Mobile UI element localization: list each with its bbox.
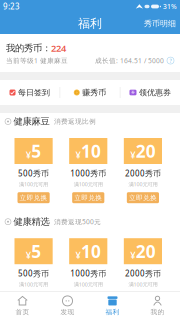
staticText: ¥ xyxy=(130,149,135,161)
staticText: 首页 xyxy=(15,308,29,316)
staticText: 9:23 xyxy=(3,1,20,12)
staticText: 当前等级1 健康麻豆 xyxy=(6,56,68,65)
staticText: 福利 xyxy=(78,16,102,31)
staticText: 满100元可用 xyxy=(128,281,157,288)
staticText: 20 xyxy=(136,139,156,162)
button[interactable]: 券 xyxy=(120,80,180,105)
button[interactable]: 每日签到 xyxy=(0,80,59,105)
staticText: 满100元可用 xyxy=(19,281,48,288)
staticText: 赚秀币 xyxy=(82,88,106,97)
staticText: 健康精选 xyxy=(13,216,49,227)
staticText: 我的 xyxy=(150,308,164,316)
staticText: 我的秀币： xyxy=(6,42,51,54)
button[interactable]: 首页 xyxy=(0,291,45,320)
staticText: 20 xyxy=(136,240,156,263)
staticText: ¥ xyxy=(75,149,80,161)
staticText: 成长值: 164.51 / 5000 xyxy=(95,56,164,65)
staticText: 健康麻豆 xyxy=(13,116,49,127)
staticText: 券 xyxy=(131,90,135,95)
staticText: 领优惠券 xyxy=(139,88,171,97)
staticText: 10 xyxy=(81,139,101,162)
staticText: 福利 xyxy=(105,308,119,316)
staticText: 1000秀币 xyxy=(70,168,106,179)
staticText: 每日签到 xyxy=(18,88,50,97)
button[interactable]: 发现 xyxy=(45,291,90,320)
staticText: 立即兑换 xyxy=(129,194,157,202)
staticText: 10 xyxy=(81,240,101,263)
staticText: 满100元可用 xyxy=(74,281,103,288)
button[interactable]: 立即兑换 xyxy=(127,192,159,203)
button[interactable]: 赚秀币 xyxy=(60,80,120,105)
staticText: 满100元可用 xyxy=(74,181,103,188)
button[interactable]: 成长值说明 xyxy=(164,57,174,64)
staticText: 立即兑换 xyxy=(20,294,48,302)
staticText: 立即兑换 xyxy=(129,294,157,302)
button[interactable]: 福利 xyxy=(90,291,135,320)
staticText: 5 xyxy=(31,139,41,162)
button[interactable]: 我的 xyxy=(135,291,180,320)
staticText: 2000秀币 xyxy=(125,268,161,279)
staticText: 发现 xyxy=(60,308,74,316)
staticText: ¥ xyxy=(26,149,31,161)
button[interactable]: 立即兑换 xyxy=(127,292,159,303)
staticText: 满100元可用 xyxy=(128,181,157,188)
staticText: 消费返现500元 xyxy=(54,217,101,226)
staticText: ? xyxy=(169,57,171,64)
staticText: 秀币明细 xyxy=(144,19,176,28)
button[interactable]: 立即兑换 xyxy=(72,292,104,303)
button[interactable]: 立即兑换 xyxy=(72,192,104,203)
button[interactable]: 秀币明细 xyxy=(140,16,180,31)
staticText: 224 xyxy=(51,42,66,54)
staticText: 31% xyxy=(163,2,177,11)
button[interactable]: 立即兑换 xyxy=(17,192,50,203)
staticText: 立即兑换 xyxy=(20,194,48,202)
staticText: 满100元可用 xyxy=(19,181,48,188)
staticText: 500秀币 xyxy=(18,268,49,279)
staticText: 500秀币 xyxy=(18,168,49,179)
staticText: 消费返现比例 xyxy=(54,117,96,126)
staticText: 2000秀币 xyxy=(125,168,161,179)
staticText: 1000秀币 xyxy=(70,268,106,279)
staticText: ¥ xyxy=(26,249,31,261)
staticText: ¥ xyxy=(75,249,80,261)
staticText: ¥ xyxy=(130,249,135,261)
staticText: 5 xyxy=(31,240,41,263)
button[interactable]: 立即兑换 xyxy=(17,292,50,303)
staticText: 立即兑换 xyxy=(74,194,102,202)
